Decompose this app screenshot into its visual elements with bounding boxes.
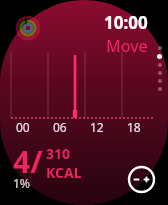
staticText: 00 [16, 119, 30, 135]
button[interactable]: Activity rings [15, 15, 41, 41]
button[interactable]: Adjust goal [127, 165, 156, 194]
staticText: 4/ [13, 141, 43, 182]
staticText: 06 [53, 119, 67, 135]
staticText: 1% [13, 175, 31, 191]
staticText: 10:00 [104, 11, 148, 34]
staticText: 18 [127, 119, 141, 135]
staticText: 310 [46, 144, 71, 163]
staticText: Move [106, 35, 148, 57]
staticText: 12 [90, 119, 104, 135]
staticText: KCAL [46, 163, 82, 182]
